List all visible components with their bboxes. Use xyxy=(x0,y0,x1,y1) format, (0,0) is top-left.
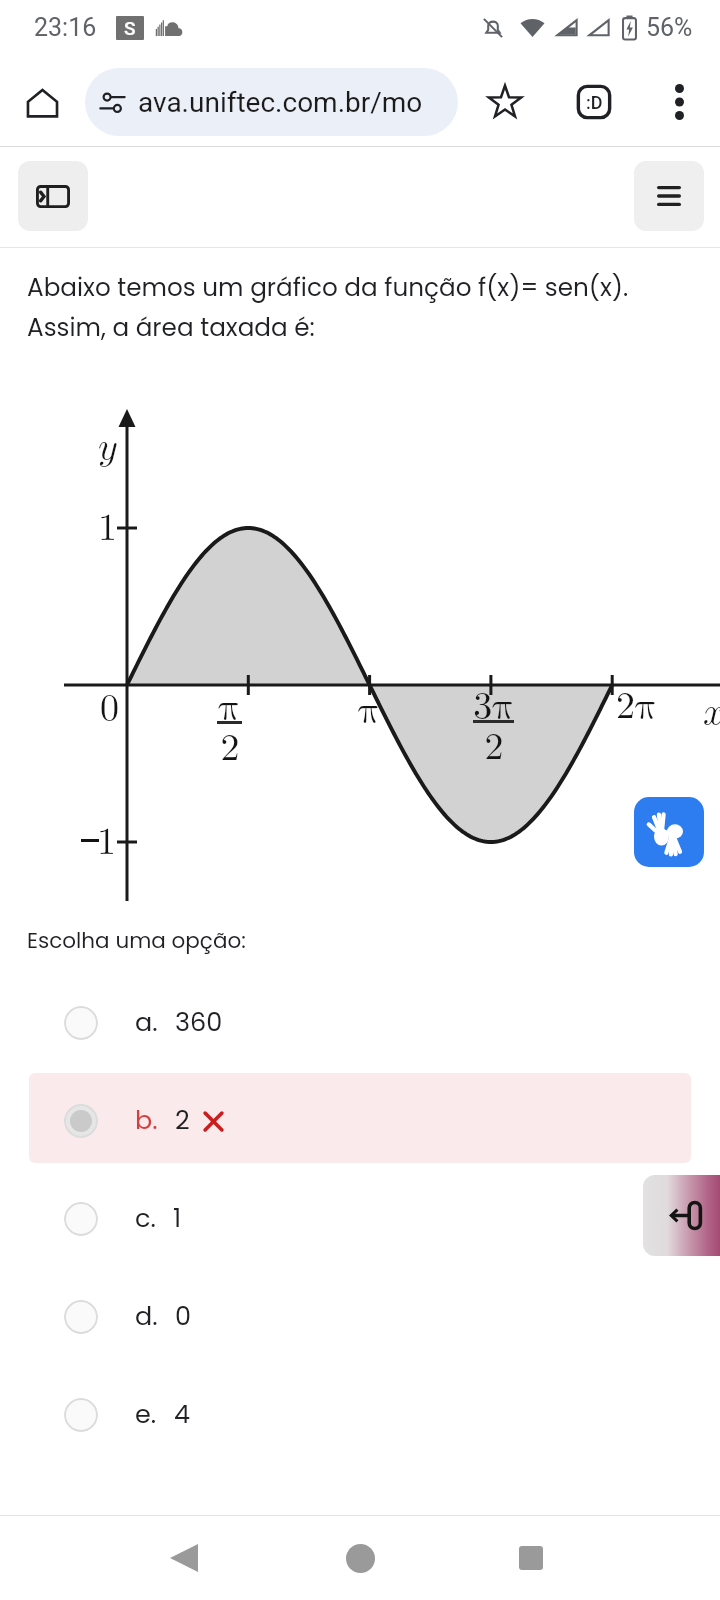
staticText: 1 xyxy=(98,509,118,547)
staticText: 2π xyxy=(616,687,658,725)
button[interactable]: More options xyxy=(651,74,707,130)
staticText: 0 xyxy=(100,689,120,727)
button[interactable] xyxy=(29,1367,691,1457)
staticText: 3π xyxy=(473,687,514,725)
button[interactable] xyxy=(29,1171,691,1261)
button[interactable]: Menu xyxy=(634,161,704,231)
button[interactable]: Back xyxy=(144,1518,224,1598)
staticText: 56% xyxy=(646,13,693,42)
button[interactable]: Tabs xyxy=(566,74,622,130)
staticText: 23:16 xyxy=(34,13,97,42)
staticText: 0 xyxy=(175,1298,192,1334)
staticText: :D xyxy=(586,92,603,113)
staticText: S xyxy=(124,17,136,39)
button[interactable]: Bookmark xyxy=(477,74,533,130)
button[interactable]: Recent apps xyxy=(491,1518,571,1598)
staticText: π xyxy=(358,691,381,729)
button[interactable]: Home xyxy=(320,1518,400,1598)
staticText: 1 xyxy=(97,823,117,861)
staticText: e. xyxy=(135,1396,157,1432)
staticText: 1 xyxy=(173,1200,182,1236)
button[interactable]: Abrir menu lateral xyxy=(18,161,88,231)
staticText: π xyxy=(218,688,241,726)
button[interactable] xyxy=(29,1269,691,1359)
staticText: a. xyxy=(135,1004,158,1040)
staticText: 2 xyxy=(220,729,240,767)
button[interactable]: ava.uniftec.com.br/mo xyxy=(85,68,458,136)
button[interactable]: VLibras acessibilidade xyxy=(634,797,704,867)
staticText: 360 xyxy=(175,1004,223,1040)
staticText: 𝑦 xyxy=(98,428,117,466)
staticText: c. xyxy=(135,1200,156,1236)
staticText: Escolha uma opção: xyxy=(27,925,246,955)
staticText: d. xyxy=(135,1298,158,1334)
staticText: 2 xyxy=(175,1102,190,1138)
button[interactable] xyxy=(29,1073,691,1163)
staticText: 𝑥 xyxy=(703,693,720,731)
button[interactable]: Home xyxy=(14,74,70,130)
staticText: 2 xyxy=(484,728,504,766)
staticText: b. xyxy=(135,1102,158,1138)
button[interactable] xyxy=(29,975,691,1065)
staticText: Abaixo temos um gráfico da função f(x)= … xyxy=(27,270,629,345)
staticText: ava.uniftec.com.br/mo xyxy=(138,86,423,119)
staticText: 4 xyxy=(174,1396,191,1432)
